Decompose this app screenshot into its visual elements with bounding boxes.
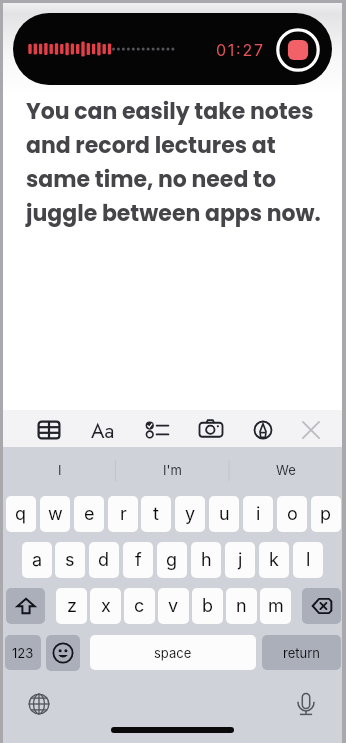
button[interactable]: e <box>74 496 104 532</box>
button[interactable]: I'm <box>116 450 229 490</box>
button[interactable]: g <box>157 542 187 578</box>
button[interactable]: x <box>90 588 121 624</box>
button[interactable]: Dictate <box>292 690 320 718</box>
button[interactable]: q <box>6 496 36 532</box>
staticText: q <box>15 503 27 525</box>
staticText: n <box>236 595 247 617</box>
staticText: a <box>32 549 43 571</box>
button[interactable]: f <box>123 542 153 578</box>
button[interactable]: Insert table <box>32 413 66 447</box>
staticText: k <box>269 549 279 571</box>
staticText: m <box>268 595 284 617</box>
button[interactable]: Shift <box>6 588 45 624</box>
staticText: w <box>48 503 63 525</box>
button[interactable]: Markup <box>246 413 280 447</box>
button[interactable]: Close <box>294 413 328 447</box>
button[interactable]: Text format <box>86 413 120 447</box>
button[interactable]: Switch keyboard <box>25 690 53 718</box>
staticText: We <box>276 462 296 478</box>
button[interactable]: w <box>40 496 70 532</box>
button[interactable]: We <box>229 450 342 490</box>
button[interactable]: Stop recording <box>275 27 321 73</box>
staticText: o <box>287 503 298 525</box>
button[interactable]: u <box>209 496 239 532</box>
button[interactable]: i <box>243 496 273 532</box>
button[interactable]: a <box>22 542 52 578</box>
staticText: h <box>201 549 212 571</box>
staticText: 01:27 <box>216 40 265 59</box>
button[interactable]: l <box>293 542 323 578</box>
button[interactable]: r <box>108 496 138 532</box>
button[interactable]: 01:27 <box>13 13 332 85</box>
button[interactable]: h <box>191 542 221 578</box>
staticText: r <box>120 503 127 525</box>
staticText: d <box>98 549 110 571</box>
staticText: c <box>134 595 145 617</box>
staticText: l <box>306 549 311 571</box>
staticText: s <box>65 549 75 571</box>
button[interactable]: space <box>90 635 256 670</box>
staticText: j <box>238 549 243 571</box>
button[interactable]: n <box>226 588 257 624</box>
staticText: Aa <box>91 416 115 445</box>
staticText: I <box>58 462 62 478</box>
staticText: p <box>320 503 332 525</box>
button[interactable]: Camera <box>194 413 228 447</box>
staticText: f <box>135 549 142 571</box>
staticText: x <box>101 595 111 617</box>
staticText: e <box>84 503 95 525</box>
button[interactable]: Checklist <box>140 413 174 447</box>
button[interactable]: I <box>3 450 116 490</box>
button[interactable]: b <box>192 588 223 624</box>
staticText: return <box>283 645 320 661</box>
button[interactable]: j <box>225 542 255 578</box>
button[interactable]: o <box>277 496 307 532</box>
button[interactable]: p <box>311 496 341 532</box>
button[interactable]: k <box>259 542 289 578</box>
button[interactable]: Delete <box>302 588 341 624</box>
staticText: y <box>185 503 196 525</box>
staticText: 123 <box>12 645 34 661</box>
staticText: t <box>153 503 159 525</box>
staticText: b <box>202 595 214 617</box>
button[interactable]: c <box>124 588 155 624</box>
staticText: You can easily take notes and record lec… <box>26 96 321 229</box>
button[interactable]: return <box>262 635 341 670</box>
staticText: v <box>168 595 179 617</box>
staticText: u <box>219 503 230 525</box>
staticText: I'm <box>163 462 182 478</box>
button[interactable]: s <box>55 542 85 578</box>
button[interactable]: z <box>56 588 87 624</box>
button[interactable]: v <box>158 588 189 624</box>
button[interactable]: m <box>260 588 291 624</box>
button[interactable]: 123 <box>5 635 41 670</box>
staticText: g <box>166 549 178 571</box>
button[interactable]: t <box>141 496 171 532</box>
button[interactable]: Emoji <box>46 635 80 671</box>
button[interactable]: y <box>175 496 205 532</box>
button[interactable]: d <box>89 542 119 578</box>
staticText: space <box>154 645 192 661</box>
staticText: i <box>256 503 261 525</box>
staticText: z <box>67 595 77 617</box>
